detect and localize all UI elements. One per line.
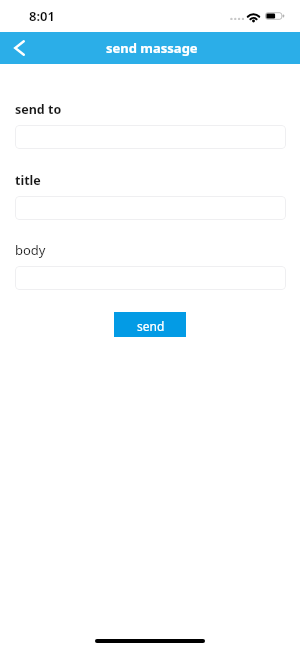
button[interactable]: title input bbox=[15, 196, 286, 220]
staticText: body bbox=[15, 241, 46, 259]
button[interactable]: body input bbox=[15, 266, 286, 290]
staticText: send bbox=[137, 318, 165, 334]
staticText: title bbox=[15, 172, 41, 189]
button[interactable]: Back bbox=[6, 35, 32, 61]
staticText: send to bbox=[15, 101, 62, 118]
staticText: 8:01 bbox=[29, 7, 55, 25]
staticText: send massage bbox=[106, 39, 198, 57]
button[interactable]: send to input bbox=[15, 125, 286, 149]
button[interactable]: send bbox=[114, 312, 186, 337]
